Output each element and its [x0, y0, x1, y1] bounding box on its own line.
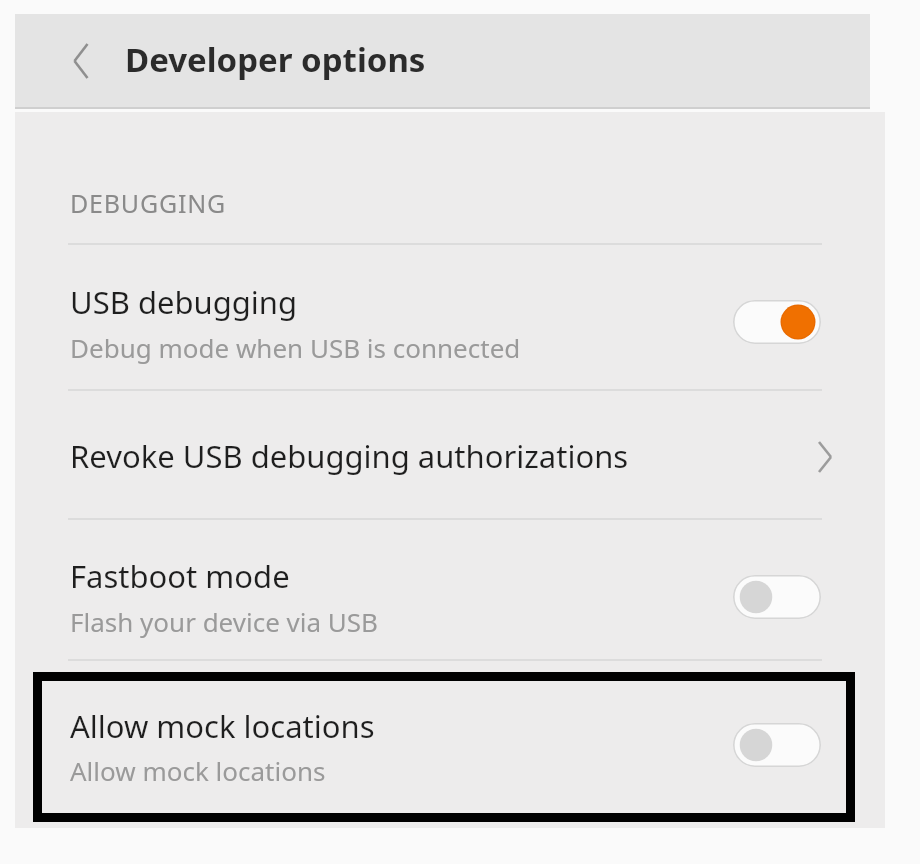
staticText: Allow mock locations — [70, 753, 326, 788]
staticText: Allow mock locations — [70, 705, 375, 747]
staticText: Fastboot mode — [70, 555, 290, 597]
staticText: USB debugging — [70, 281, 298, 323]
staticText: Revoke USB debugging authorizations — [70, 435, 629, 477]
button[interactable]: Back — [51, 33, 107, 89]
button[interactable]: Toggle on — [733, 300, 821, 344]
other: Open — [795, 427, 855, 487]
button[interactable]: Toggle off — [733, 723, 821, 767]
button[interactable]: USB debugging — [15, 255, 885, 389]
button[interactable]: Fastboot mode — [15, 528, 885, 659]
button[interactable]: Revoke USB debugging authorizations — [15, 395, 885, 518]
staticText: Flash your device via USB — [70, 604, 379, 639]
button[interactable]: Allow mock locations — [42, 681, 846, 813]
staticText: DEBUGGING — [70, 186, 226, 220]
staticText: Developer options — [125, 37, 426, 82]
staticText: Debug mode when USB is connected — [70, 330, 521, 365]
button[interactable]: Toggle off — [733, 575, 821, 619]
